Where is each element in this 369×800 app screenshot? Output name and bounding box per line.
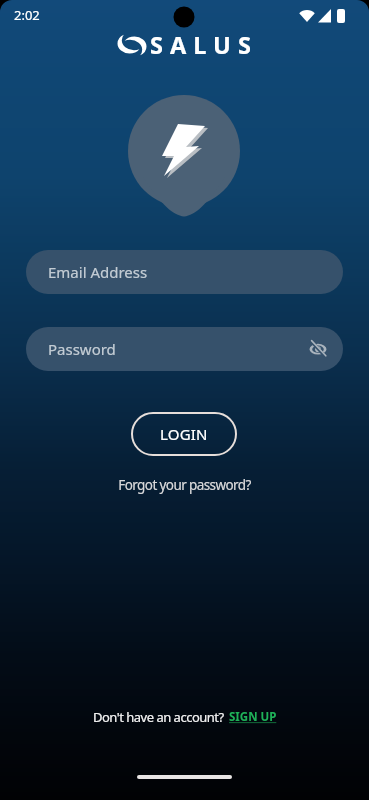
staticText: Email Address: [48, 262, 148, 282]
staticText: 2:02: [14, 6, 40, 24]
staticText: LOGIN: [160, 424, 208, 444]
staticText: SIGN UP: [229, 709, 277, 725]
staticText: Don't have an account?: [93, 708, 224, 726]
staticText: Forgot your password?: [0, 476, 369, 494]
staticText: SALUS: [150, 29, 258, 61]
staticText: Password: [48, 339, 116, 359]
